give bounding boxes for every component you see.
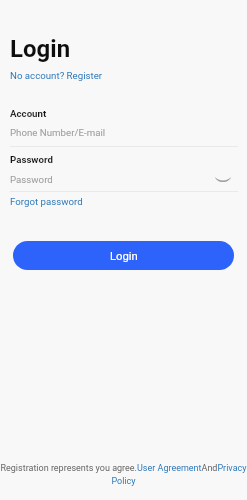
button[interactable]: Forgot password — [10, 196, 83, 207]
button[interactable]: Password input — [10, 172, 213, 186]
staticText: Login — [10, 35, 71, 63]
button[interactable]: Registration represents you agree.User A… — [0, 461, 247, 484]
staticText: No account? Register — [10, 70, 103, 81]
staticText: Phone Number/E-mail — [10, 127, 106, 138]
staticText: Forgot password — [10, 196, 83, 207]
button[interactable]: Account input — [10, 124, 238, 142]
staticText: Login — [110, 250, 138, 263]
button[interactable]: No account? Register — [10, 70, 103, 81]
staticText: Password — [10, 174, 53, 185]
staticText: Registration represents you agree.User A… — [0, 463, 247, 486]
staticText: Password — [10, 154, 53, 165]
button[interactable]: Login — [13, 241, 234, 270]
button[interactable]: Show password — [213, 172, 233, 186]
staticText: Account — [10, 108, 47, 119]
